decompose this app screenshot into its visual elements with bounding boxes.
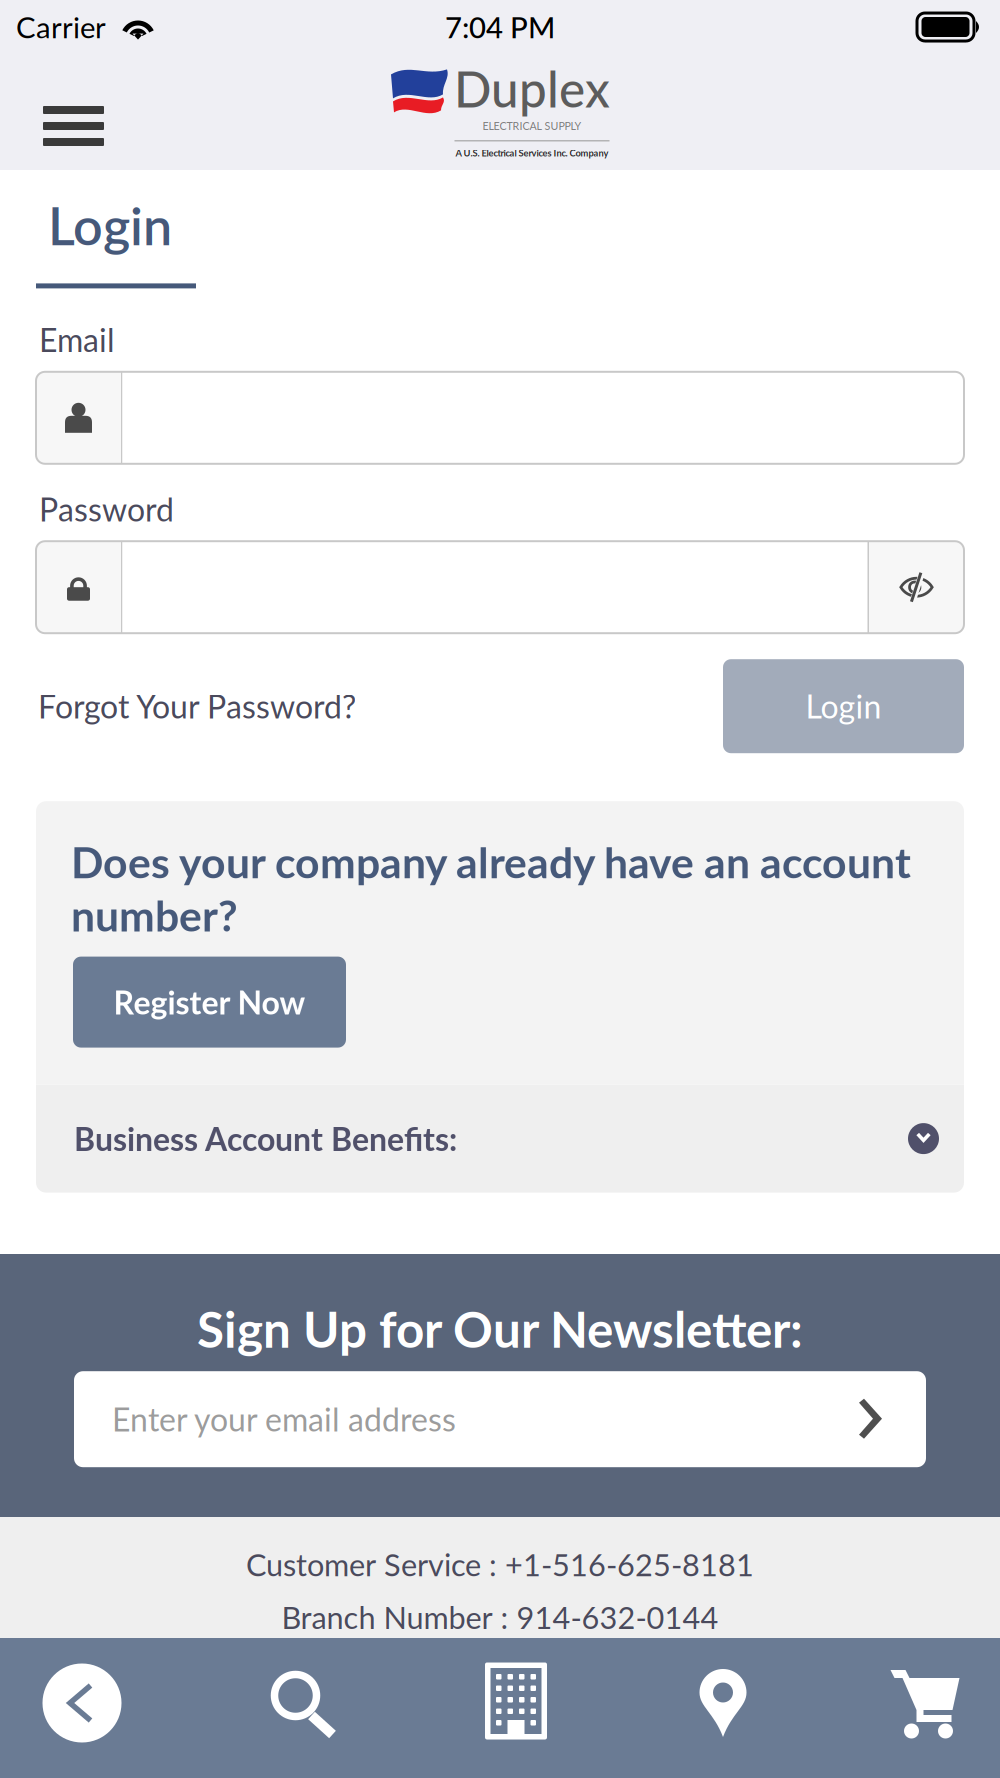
staticText: Password xyxy=(39,490,174,528)
staticText: Branch Number : 914-632-0144 xyxy=(281,1599,718,1636)
button[interactable]: Register Now xyxy=(73,957,346,1048)
staticText: Carrier xyxy=(16,9,106,45)
staticText: 7:04 PM xyxy=(445,9,555,45)
staticText: Register Now xyxy=(113,983,305,1021)
button[interactable]: Branches xyxy=(400,1638,600,1778)
button[interactable]: Store locator xyxy=(600,1638,800,1778)
button[interactable]: Search xyxy=(200,1638,400,1778)
staticText: Sign Up for Our Newsletter: xyxy=(197,1299,803,1358)
staticText: Does your company already have an accoun… xyxy=(71,836,911,887)
button[interactable]: Forgot Your Password? xyxy=(36,687,356,725)
button[interactable]: Show password xyxy=(869,541,964,633)
staticText: Login xyxy=(48,194,172,256)
staticText: A U.S. Electrical Services Inc. Company xyxy=(455,147,608,159)
staticText: Enter your email address xyxy=(112,1400,456,1438)
button[interactable]: Login xyxy=(723,659,964,753)
button[interactable]: Cart xyxy=(800,1638,1000,1778)
button[interactable]: Business Account Benefits: xyxy=(36,1085,964,1193)
staticText: Customer Service : +1-516-625-8181 xyxy=(246,1546,754,1583)
staticText: Forgot Your Password? xyxy=(38,687,356,725)
staticText: Business Account Benefits: xyxy=(74,1119,457,1158)
button[interactable]: Subscribe xyxy=(856,1375,926,1464)
staticText: number? xyxy=(71,889,238,941)
button[interactable]: Back xyxy=(0,1638,200,1778)
staticText: Duplex xyxy=(454,59,610,118)
button[interactable]: Menu xyxy=(0,69,130,155)
staticText: Login xyxy=(805,687,881,725)
staticText: Email xyxy=(39,320,115,359)
staticText: ELECTRICAL SUPPLY xyxy=(482,119,581,132)
